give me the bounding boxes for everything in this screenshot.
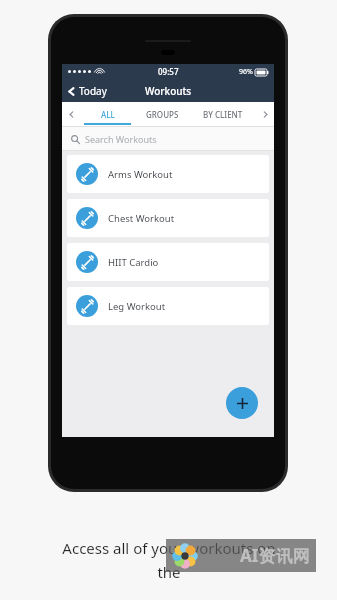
staticText: 09:57 [158, 66, 179, 77]
staticText: Search Workouts [85, 133, 157, 145]
staticText: Today [79, 84, 107, 98]
staticText: Arms Workout [108, 168, 173, 181]
button[interactable]: Today [67, 84, 107, 98]
button[interactable]: Add workout [226, 387, 258, 419]
staticText: BY CLIENT [203, 109, 243, 120]
button[interactable]: Search Workouts [71, 133, 157, 145]
staticText: Workouts [145, 84, 192, 98]
button[interactable]: Arms Workout [67, 155, 269, 193]
button[interactable]: Previous tabs [62, 102, 80, 126]
button[interactable]: HIIT Cardio [67, 243, 269, 281]
button[interactable]: BY CLIENT [190, 102, 256, 126]
button[interactable]: Next tabs [256, 102, 274, 126]
staticText: HIIT Cardio [108, 256, 159, 269]
staticText: Leg Workout [108, 300, 166, 313]
staticText: AI资讯网 [240, 544, 310, 567]
button[interactable]: Leg Workout [67, 287, 269, 325]
staticText: Chest Workout [108, 212, 175, 225]
button[interactable]: Chest Workout [67, 199, 269, 237]
staticText: 96% [239, 67, 253, 77]
button[interactable]: ALL [80, 102, 135, 126]
button[interactable]: GROUPS [135, 102, 190, 126]
staticText: ALL [101, 109, 115, 120]
staticText: the [157, 562, 181, 582]
staticText: GROUPS [146, 109, 179, 120]
staticText: Access all of your workouts on [62, 538, 276, 558]
